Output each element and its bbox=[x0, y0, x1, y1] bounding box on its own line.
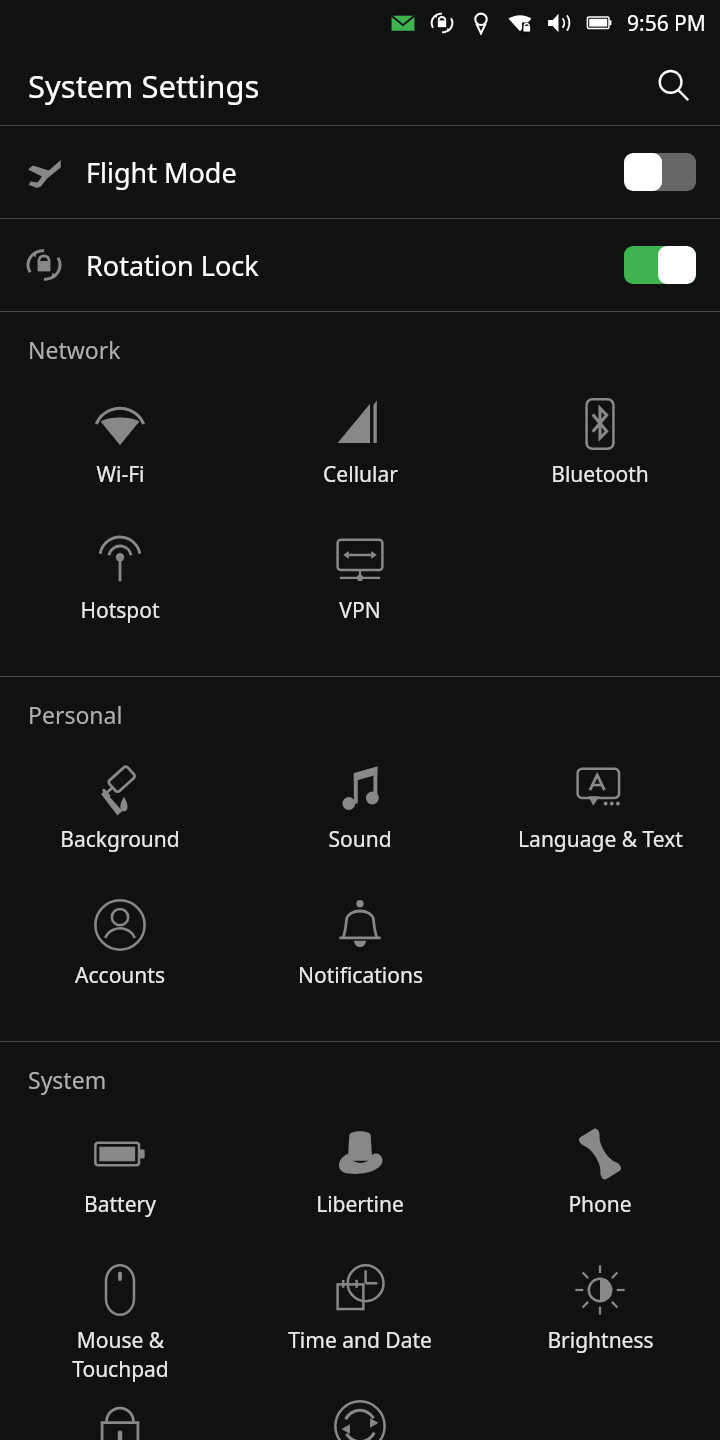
staticText: 9:56 PM bbox=[627, 9, 706, 38]
staticText: Sound bbox=[328, 825, 392, 854]
button[interactable]: Time and Date bbox=[240, 1252, 480, 1388]
button[interactable]: Mouse & Touchpad bbox=[0, 1252, 240, 1388]
button[interactable]: Wi-Fi bbox=[0, 386, 240, 522]
staticText: Flight Mode bbox=[86, 154, 237, 191]
staticText: Background bbox=[60, 825, 180, 854]
staticText: Hotspot bbox=[80, 596, 160, 625]
button[interactable]: Cellular bbox=[240, 386, 480, 522]
staticText: System bbox=[28, 1064, 107, 1095]
button[interactable]: Flight Mode bbox=[0, 126, 720, 218]
button[interactable]: Brightness bbox=[480, 1252, 720, 1388]
button[interactable]: Bluetooth bbox=[480, 386, 720, 522]
button[interactable]: Rotation Lock bbox=[0, 219, 720, 311]
button[interactable]: Accounts bbox=[0, 887, 240, 1023]
staticText: Notifications bbox=[298, 961, 423, 990]
staticText: VPN bbox=[339, 596, 381, 625]
staticText: Cellular bbox=[323, 460, 398, 489]
staticText: Wi-Fi bbox=[96, 460, 145, 489]
button[interactable]: Battery bbox=[0, 1116, 240, 1252]
button[interactable]: Search bbox=[648, 60, 700, 112]
button[interactable] bbox=[0, 1388, 240, 1440]
staticText: Brightness bbox=[547, 1326, 654, 1355]
button[interactable]: Libertine bbox=[240, 1116, 480, 1252]
staticText: System Settings bbox=[28, 65, 260, 107]
button[interactable]: Hotspot bbox=[0, 522, 240, 658]
staticText: Libertine bbox=[316, 1190, 404, 1219]
staticText: Bluetooth bbox=[551, 460, 649, 489]
button[interactable]: Phone bbox=[480, 1116, 720, 1252]
button[interactable]: Notifications bbox=[240, 887, 480, 1023]
staticText: Personal bbox=[28, 699, 123, 730]
button[interactable]: Language & Text bbox=[480, 751, 720, 887]
staticText: Accounts bbox=[75, 961, 165, 990]
button[interactable]: Sound bbox=[240, 751, 480, 887]
staticText: Network bbox=[28, 334, 121, 365]
button[interactable] bbox=[240, 1388, 480, 1440]
button[interactable]: Background bbox=[0, 751, 240, 887]
staticText: Time and Date bbox=[288, 1326, 432, 1355]
button[interactable]: VPN bbox=[240, 522, 480, 658]
staticText: Phone bbox=[568, 1190, 632, 1219]
staticText: Rotation Lock bbox=[86, 247, 259, 284]
staticText: Mouse & Touchpad bbox=[72, 1326, 169, 1384]
staticText: Battery bbox=[84, 1190, 156, 1219]
staticText: Language & Text bbox=[518, 825, 683, 854]
